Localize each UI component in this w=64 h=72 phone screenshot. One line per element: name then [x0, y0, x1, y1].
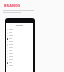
button[interactable] [6, 64, 33, 67]
button[interactable] [6, 34, 33, 37]
button[interactable] [6, 55, 33, 58]
button[interactable] [6, 37, 33, 40]
button[interactable] [6, 61, 33, 64]
button[interactable] [6, 52, 33, 55]
button[interactable] [6, 49, 33, 52]
button[interactable] [6, 28, 33, 31]
button[interactable]: BRANDS [4, 3, 21, 8]
button[interactable] [6, 46, 33, 49]
button[interactable] [6, 58, 33, 61]
button[interactable] [6, 40, 33, 43]
button[interactable] [6, 43, 33, 46]
button[interactable] [6, 31, 33, 34]
staticText: BRANDS [4, 3, 21, 8]
